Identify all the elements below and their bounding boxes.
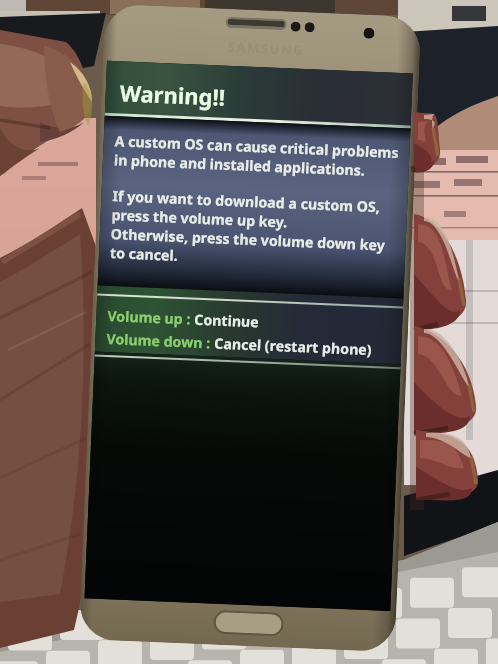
button[interactable]: Volume up : bbox=[107, 306, 402, 337]
staticText: Warning!! bbox=[119, 77, 226, 112]
staticText: Volume up : bbox=[107, 306, 195, 329]
staticText: Cancel (restart phone) bbox=[214, 333, 373, 359]
staticText: Otherwise, press the volume down key bbox=[110, 224, 386, 255]
button[interactable]: Volume down : bbox=[106, 329, 401, 360]
staticText: Volume down : bbox=[106, 329, 215, 352]
button[interactable]: Home bbox=[213, 610, 284, 637]
staticText: Continue bbox=[194, 310, 260, 331]
staticText: in phone and installed applications. bbox=[113, 150, 366, 180]
staticText: If you want to download a custom OS, bbox=[112, 186, 381, 216]
staticText: to cancel. bbox=[110, 243, 178, 265]
staticText: SAMSUNG bbox=[227, 38, 305, 59]
staticText: A custom OS can cause critical problems bbox=[114, 131, 400, 162]
staticText: press the volume up key. bbox=[111, 205, 288, 231]
